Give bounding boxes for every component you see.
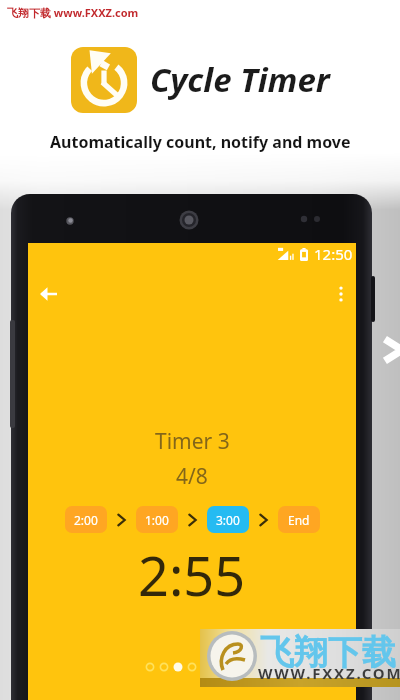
button[interactable]: End [278,506,320,533]
staticText: 12:50 [314,244,353,264]
staticText: End [288,512,310,528]
staticText: 2:55 [138,538,246,612]
button[interactable]: 3:00 [207,506,249,533]
staticText: 3:00 [216,512,240,528]
button[interactable]: More options [317,270,365,318]
staticText: Timer 3 [155,427,230,456]
staticText: Automatically count, notify and move [50,131,351,153]
staticText: 2:00 [74,512,98,528]
button[interactable]: 2:00 [65,506,107,533]
staticText: 1:00 [145,512,169,528]
staticText: 飞翔下载 www.FXXZ.com [7,5,139,20]
button[interactable]: Back [24,270,72,318]
staticText: 4/8 [176,462,208,491]
staticText: Cycle Timer [150,57,330,102]
staticText: WWW.FXXZ.COM [258,663,400,683]
staticText: 飞翔下载 [260,631,396,674]
button[interactable]: 1:00 [136,506,178,533]
